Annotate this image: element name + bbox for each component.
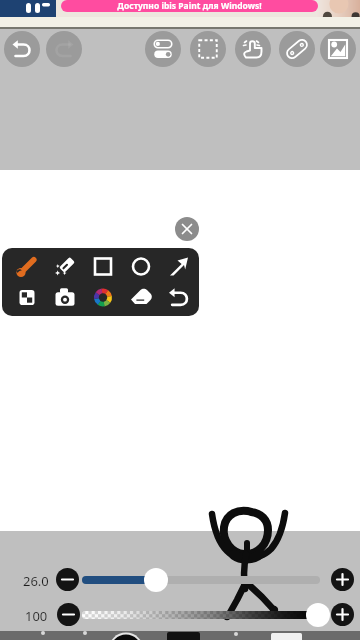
button[interactable]: Selection: [190, 31, 226, 67]
button[interactable]: Brush: [8, 251, 46, 282]
button[interactable]: Ellipse: [122, 251, 160, 282]
button[interactable]: Smudge: [46, 251, 84, 282]
button[interactable]: Brush size slider: [144, 568, 168, 592]
button[interactable]: Undo: [160, 282, 198, 313]
button[interactable]: Increase opacity: [331, 603, 354, 626]
button[interactable]: Layers: [8, 282, 46, 313]
button[interactable]: Camera: [46, 282, 84, 313]
button[interactable]: Decrease opacity: [57, 603, 80, 626]
staticText: Доступно ibis Paint для Windows!: [117, 0, 262, 12]
button[interactable]: Add image: [320, 31, 356, 67]
button[interactable]: Rectangle: [84, 251, 122, 282]
button[interactable]: Bottom toolbar: [0, 631, 360, 640]
staticText: 26.0: [23, 572, 49, 590]
button[interactable]: Opacity slider: [306, 603, 330, 627]
button[interactable]: Transform: [235, 31, 271, 67]
button[interactable]: Decrease size: [56, 568, 79, 591]
button[interactable]: Move: [160, 251, 198, 282]
button[interactable]: Redo: [46, 31, 82, 67]
button[interactable]: Layer settings: [145, 31, 181, 67]
button[interactable]: Eraser: [122, 282, 160, 313]
button[interactable]: Colour: [84, 282, 122, 313]
button[interactable]: App logo: [0, 0, 56, 17]
button[interactable]: Bone tool: [279, 31, 315, 67]
button[interactable]: Increase size: [331, 568, 354, 591]
button[interactable]: Close palette: [175, 217, 199, 241]
button[interactable]: Доступно ibis Paint для Windows!: [61, 0, 318, 12]
staticText: 100: [25, 607, 48, 625]
button[interactable]: Undo: [4, 31, 40, 67]
